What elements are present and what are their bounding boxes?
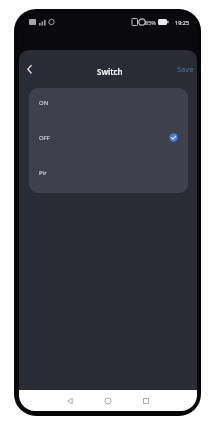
staticText: Save (177, 64, 194, 74)
button[interactable]: Save (177, 64, 194, 74)
button[interactable]: ON (29, 88, 188, 123)
button[interactable] (136, 391, 156, 411)
staticText: ON (39, 99, 49, 107)
button[interactable]: Pir (29, 158, 188, 193)
button[interactable] (98, 391, 118, 411)
staticText: 19:25 (175, 19, 190, 26)
staticText: OFF (39, 134, 50, 142)
button[interactable] (60, 391, 80, 411)
button[interactable]: OFF (29, 123, 188, 158)
button[interactable] (23, 63, 36, 76)
staticText: Switch (97, 66, 123, 77)
staticText: 85% (145, 19, 156, 26)
staticText: Pir (39, 169, 47, 177)
